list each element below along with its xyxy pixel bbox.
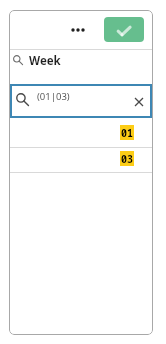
- button[interactable]: Confirm: [104, 17, 144, 42]
- staticText: 01: [121, 126, 133, 140]
- staticText: 03: [121, 152, 133, 166]
- button[interactable]: More options: [66, 18, 90, 41]
- staticText: Week: [29, 53, 61, 69]
- button[interactable]: (01|03): [10, 84, 152, 118]
- staticText: (01|03): [37, 90, 70, 103]
- button[interactable]: Week: [9, 50, 153, 73]
- button[interactable]: 01: [9, 118, 153, 147]
- button[interactable]: 03: [9, 148, 153, 172]
- button[interactable]: Clear search: [130, 93, 148, 111]
